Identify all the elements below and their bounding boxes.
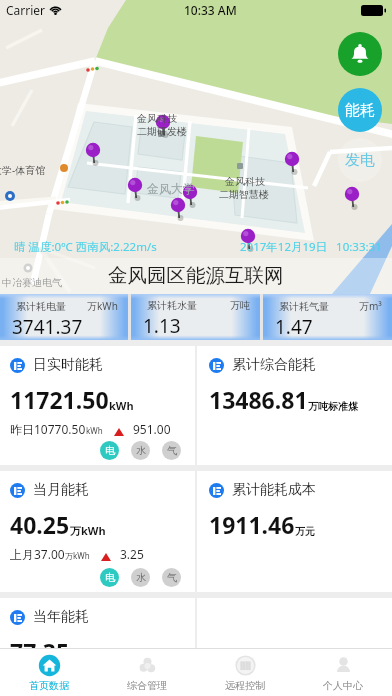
staticText: 累计能耗成本 <box>232 481 316 499</box>
staticText: Carrier <box>6 2 46 18</box>
button[interactable]: 累计耗气量 <box>263 294 392 340</box>
staticText: 累计耗气量 <box>279 300 329 313</box>
staticText: 综合管理 <box>127 679 167 692</box>
staticText: 13486.81 <box>209 384 308 415</box>
staticText: 2017年12月19日 10:33:31 <box>240 239 382 255</box>
staticText: 40.25 <box>10 509 70 540</box>
staticText: 二期研发楼 <box>137 125 187 138</box>
staticText: kWh <box>109 398 134 413</box>
staticText: 累计耗电量 <box>16 300 66 313</box>
staticText: 水 <box>136 444 146 457</box>
staticText: 万kWh <box>87 299 118 313</box>
button[interactable]: 首页数据 <box>0 649 98 696</box>
staticText: 累计耗水量 <box>147 299 197 312</box>
staticText: 中冶赛迪电气 <box>2 276 62 289</box>
staticText: 电 <box>105 571 115 584</box>
staticText: 首页数据 <box>29 679 69 692</box>
staticText: 远程控制 <box>225 679 265 692</box>
staticText: 日实时能耗 <box>33 356 103 374</box>
staticText: 当月能耗 <box>33 481 89 499</box>
staticText: 二期智慧楼 <box>219 188 269 201</box>
staticText: 77.35 <box>10 636 70 667</box>
staticText: 12.35 <box>120 673 151 689</box>
staticText: 3741.37 <box>12 314 83 340</box>
staticText: 个人中心 <box>323 679 363 692</box>
staticText: 累计综合能耗 <box>232 356 316 374</box>
button[interactable] <box>197 598 392 696</box>
staticText: 金风园区能源互联网 <box>108 263 284 288</box>
button[interactable]: 远程控制 <box>196 649 294 696</box>
staticText: 大学-体育馆 <box>0 163 46 177</box>
staticText: 电 <box>105 444 115 457</box>
staticText: 万吨标准煤 <box>308 400 358 413</box>
button[interactable]: 气 <box>162 568 181 587</box>
button[interactable]: 水 <box>131 441 150 460</box>
staticText: 发电 <box>345 151 375 170</box>
staticText: 951.00 <box>133 421 171 437</box>
staticText: 上月37.00 <box>10 546 65 562</box>
button[interactable]: 电 <box>100 441 119 460</box>
button[interactable]: 累计耗水量 <box>131 294 260 340</box>
button[interactable]: 综合管理 <box>98 649 196 696</box>
staticText: 晴 温度:0ºC 西南风:2.22m/s <box>14 239 157 255</box>
button[interactable]: 电 <box>100 568 119 587</box>
staticText: 3.25 <box>120 546 144 562</box>
button[interactable]: 水 <box>131 689 150 691</box>
button[interactable]: 当月能耗 <box>0 471 195 592</box>
staticText: 万kWh <box>70 523 106 538</box>
staticText: 去年65.00 <box>10 673 65 689</box>
staticText: 1.13 <box>143 313 181 339</box>
staticText: 气 <box>167 444 177 457</box>
staticText: 万吨 <box>230 299 250 312</box>
staticText: 金风科技 <box>225 175 265 188</box>
staticText: 气 <box>167 571 177 584</box>
staticText: 10:33 AM <box>184 2 237 18</box>
staticText: 当年能耗 <box>33 608 89 626</box>
staticText: 能耗 <box>345 101 375 120</box>
button[interactable]: 发电 <box>338 138 382 182</box>
staticText: 水 <box>136 689 146 691</box>
staticText: kWh <box>86 425 103 436</box>
button[interactable]: 能耗 <box>338 88 382 132</box>
staticText: 金风科技 <box>137 112 177 125</box>
staticText: 昨日10770.50 <box>10 421 86 437</box>
button[interactable]: 气 <box>162 689 181 691</box>
staticText: 水 <box>136 571 146 584</box>
staticText: 1911.46 <box>209 509 295 540</box>
button[interactable]: 气 <box>162 441 181 460</box>
staticText: 万kWh <box>65 550 90 561</box>
staticText: 万m³ <box>359 299 382 313</box>
staticText: 11721.50 <box>10 384 109 415</box>
button[interactable]: 当年能耗 <box>0 598 195 696</box>
button[interactable]: 累计耗电量 <box>0 294 128 340</box>
button[interactable]: 累计能耗成本 <box>197 471 392 592</box>
button[interactable]: 水 <box>131 568 150 587</box>
button[interactable]: 个人中心 <box>294 649 392 696</box>
staticText: 1.47 <box>275 314 313 340</box>
staticText: 万元 <box>295 525 315 538</box>
button[interactable]: 日实时能耗 <box>0 346 195 465</box>
button[interactable]: 累计综合能耗 <box>197 346 392 465</box>
staticText: 万kWh <box>65 677 90 688</box>
staticText: 金风大学 <box>147 181 195 196</box>
button[interactable]: Alerts <box>338 32 382 76</box>
